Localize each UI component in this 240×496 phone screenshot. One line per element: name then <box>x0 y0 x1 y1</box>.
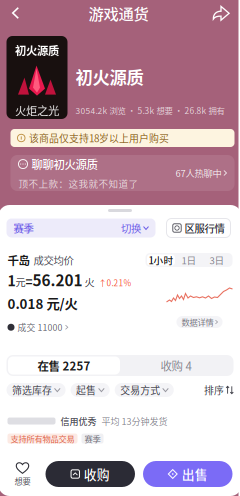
button[interactable]: 赛季 <box>6 218 155 237</box>
staticText: 平均 13分钟发货 <box>101 414 167 427</box>
staticText: 切换 <box>121 220 141 236</box>
staticText: 成交均价 <box>29 252 73 268</box>
button[interactable]: 起售 <box>71 383 110 397</box>
staticText: 1日 <box>181 253 196 267</box>
button[interactable]: 区服行情 <box>166 218 230 237</box>
staticText: 筛选库存 <box>12 383 52 397</box>
button[interactable]: 出售 <box>143 461 232 487</box>
staticText: 该商品仅支持18岁以上用户购买 <box>29 131 169 145</box>
staticText: 元 <box>15 274 25 289</box>
button[interactable]: 排序 <box>204 383 233 397</box>
button[interactable]: 1小时 <box>147 254 175 265</box>
staticText: 56.201 <box>32 268 82 291</box>
staticText: ↑0.21% <box>94 277 131 289</box>
staticText: 聊聊初火源质 <box>31 156 97 172</box>
staticText: 成交 11000 <box>17 321 62 334</box>
staticText: 交易方式 <box>120 383 160 397</box>
staticText: 出售 <box>182 465 208 483</box>
button[interactable]: 在售 2257 <box>8 356 120 374</box>
staticText: 千岛 <box>7 252 29 268</box>
staticText: 67人热聊中 <box>175 166 221 180</box>
staticText: 赛季 <box>84 433 100 445</box>
staticText: 排序 <box>204 383 224 397</box>
staticText: 初火源质 <box>15 42 59 58</box>
staticText: 火炬之光 <box>15 102 59 118</box>
staticText: = <box>25 272 32 290</box>
staticText: 火 <box>82 274 94 289</box>
button[interactable]: Back <box>0 0 32 26</box>
staticText: 数据详情 <box>181 316 213 328</box>
button[interactable]: 聊聊初火源质 <box>2 147 234 191</box>
staticText: 游戏通货 <box>88 2 148 24</box>
staticText: 想要 <box>14 475 30 487</box>
button[interactable]: 交易方式 <box>115 383 174 397</box>
staticText: 信用优秀 <box>60 414 96 427</box>
staticText: 赛季 <box>13 220 33 236</box>
button[interactable]: 筛选库存 <box>6 383 66 397</box>
staticText: 1小时 <box>148 253 173 267</box>
staticText: 初火源质 <box>75 64 143 89</box>
staticText: 1 <box>7 270 15 290</box>
staticText: 顶不上款：这我就不知道了 <box>18 176 138 190</box>
button[interactable]: 收购 4 <box>120 356 232 374</box>
button[interactable]: 1日 <box>175 254 203 265</box>
button[interactable]: Share <box>204 0 238 26</box>
button[interactable]: 想要 <box>7 458 37 490</box>
button[interactable]: 信用优秀 <box>0 408 240 442</box>
button[interactable]: 数据详情 <box>176 316 223 328</box>
staticText: 收购 <box>84 465 110 483</box>
staticText: 支持所有物品交易 <box>10 433 74 445</box>
staticText: 3054.2k 浏览 · 5.3k 想要 · 26.8k 拥有 <box>75 104 224 116</box>
staticText: 3日 <box>209 253 224 267</box>
staticText: 0.018 元/火 <box>7 294 77 313</box>
button[interactable]: 收购 <box>45 461 135 487</box>
staticText: 起售 <box>76 383 96 397</box>
staticText: 在售 2257 <box>37 357 90 374</box>
staticText: 区服行情 <box>184 220 224 236</box>
staticText: 收购 4 <box>160 357 191 374</box>
button[interactable]: 3日 <box>203 254 231 265</box>
